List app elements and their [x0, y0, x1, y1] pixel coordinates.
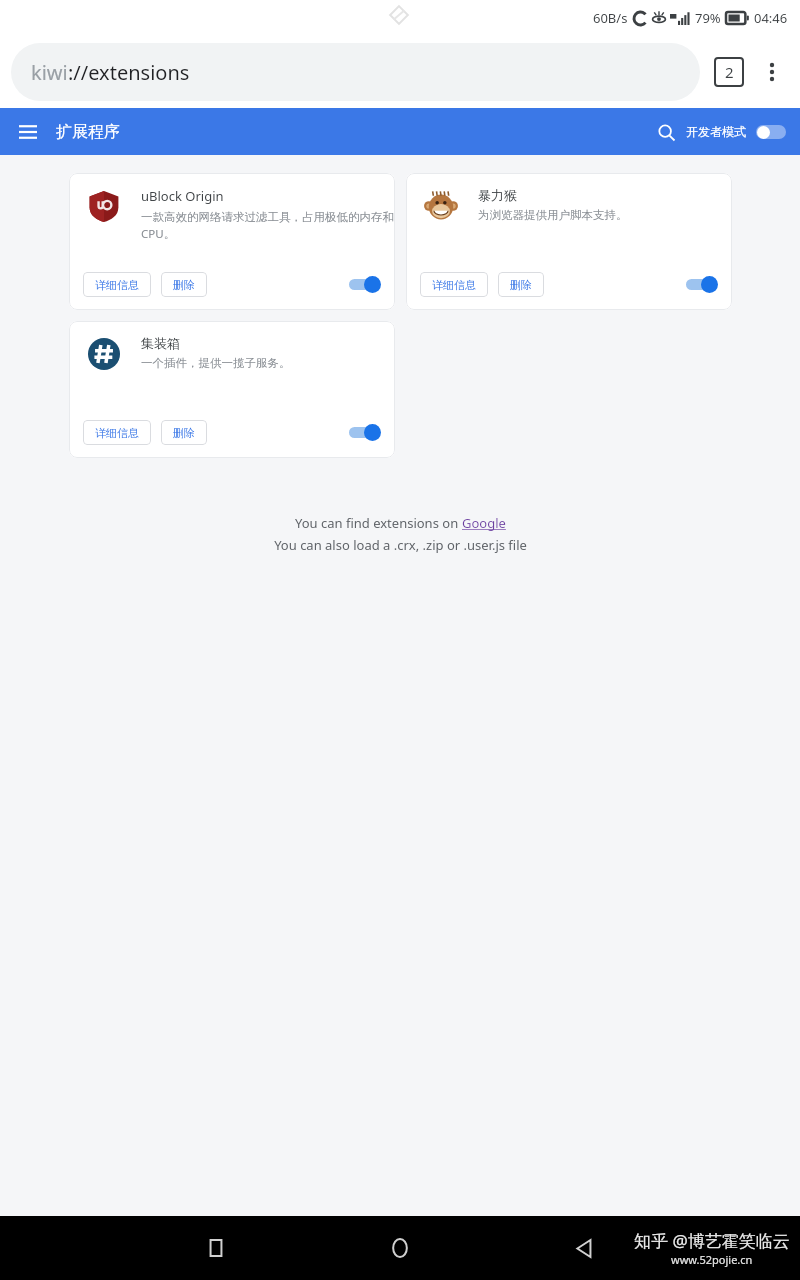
- staticText: www.52pojie.cn: [671, 1252, 753, 1267]
- button[interactable]: Search: [646, 112, 686, 152]
- staticText: uBlock Origin: [141, 187, 224, 205]
- staticText: 删除: [510, 278, 532, 292]
- staticText: 开发者模式: [686, 124, 746, 139]
- button[interactable]: 集装箱: [69, 321, 395, 458]
- button[interactable]: 删除: [161, 420, 207, 445]
- staticText: 一款高效的网络请求过滤工具，占用极低的内存和 CPU。: [141, 210, 394, 241]
- button[interactable]: uBlock Origin: [69, 173, 395, 310]
- button[interactable]: More options: [744, 44, 800, 100]
- staticText: 为浏览器提供用户脚本支持。: [478, 208, 628, 222]
- button[interactable]: Toggle extension: [347, 276, 381, 293]
- staticText: 79%: [695, 9, 721, 27]
- staticText: 详细信息: [95, 426, 139, 440]
- button[interactable]: Recents: [192, 1224, 240, 1272]
- button[interactable]: 删除: [161, 272, 207, 297]
- staticText: 详细信息: [432, 278, 476, 292]
- staticText: 扩展程序: [56, 122, 120, 142]
- staticText: 删除: [173, 426, 195, 440]
- button[interactable]: Home: [376, 1224, 424, 1272]
- button[interactable]: Toggle extension: [684, 276, 718, 293]
- staticText: 60B/s: [593, 9, 628, 27]
- staticText: You can find extensions on: [295, 514, 462, 532]
- button[interactable]: 详细信息: [420, 272, 488, 297]
- staticText: 04:46: [754, 9, 788, 27]
- button[interactable]: 详细信息: [83, 420, 151, 445]
- button[interactable]: 暴力猴: [406, 173, 732, 310]
- staticText: You can also load a .crx, .zip or .user.…: [274, 536, 527, 554]
- staticText: 一个插件，提供一揽子服务。: [141, 356, 291, 370]
- staticText: 知乎 @博艺霍笑临云: [634, 1229, 790, 1252]
- staticText: kiwi: [31, 59, 68, 86]
- button[interactable]: Toggle extension: [347, 424, 381, 441]
- staticText: 暴力猴: [478, 187, 517, 203]
- staticText: 2: [725, 62, 734, 82]
- staticText: ://extensions: [68, 59, 190, 86]
- button[interactable]: kiwi: [11, 43, 700, 101]
- button[interactable]: 详细信息: [83, 272, 151, 297]
- staticText: 集装箱: [141, 335, 180, 351]
- button[interactable]: Tabs: [714, 57, 744, 87]
- staticText: 删除: [173, 278, 195, 292]
- button[interactable]: 删除: [498, 272, 544, 297]
- staticText: 详细信息: [95, 278, 139, 292]
- button[interactable]: 开发者模式: [686, 124, 800, 139]
- button[interactable]: Google: [462, 514, 506, 532]
- button[interactable]: Menu: [6, 110, 50, 154]
- button[interactable]: Back: [560, 1224, 608, 1272]
- staticText: Google: [462, 514, 506, 532]
